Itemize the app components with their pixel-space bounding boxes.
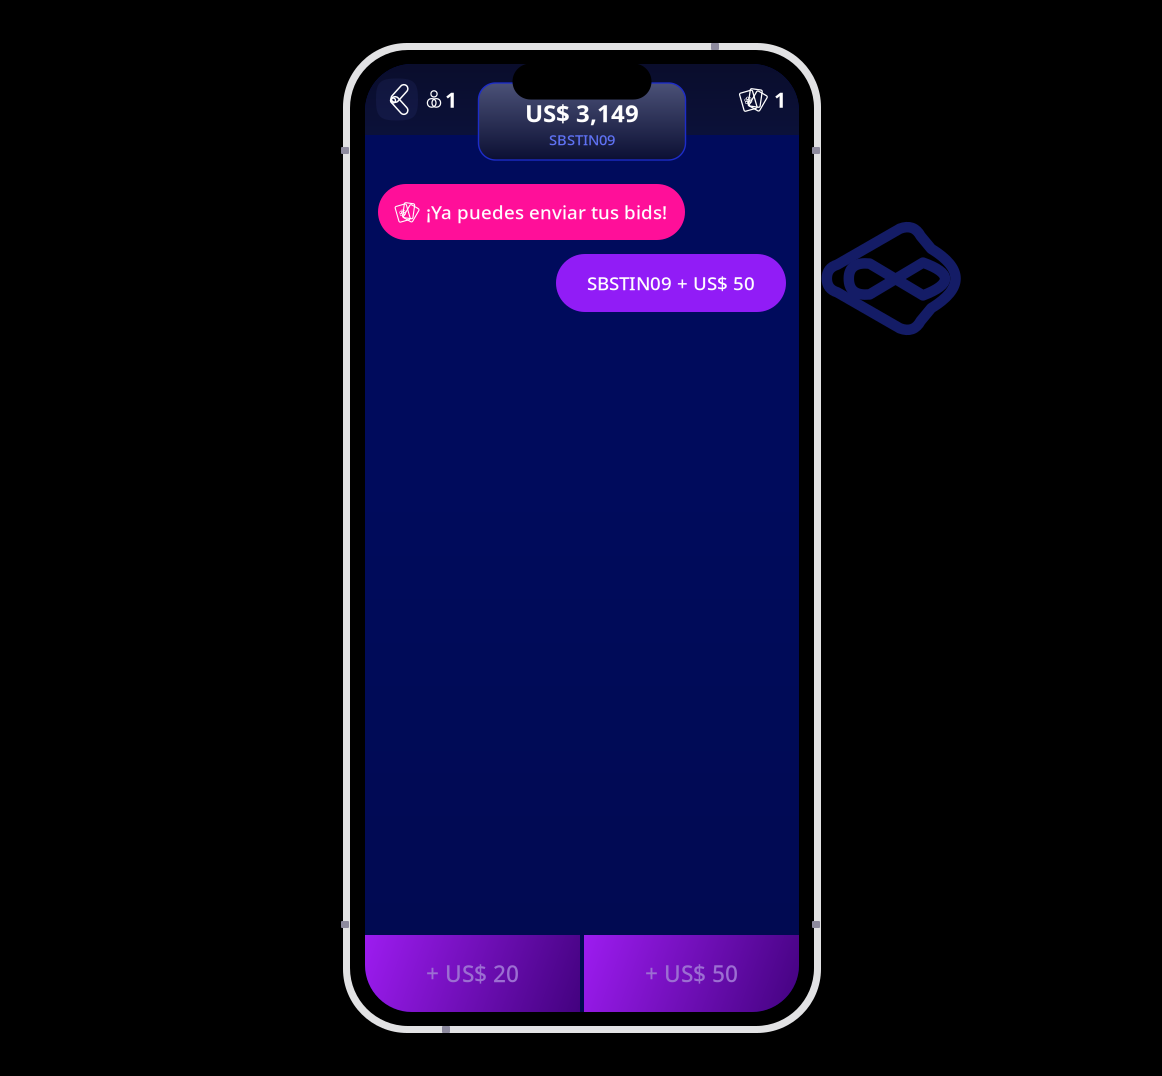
staticText: + US$ 20 — [426, 958, 519, 988]
staticText: SBSTIN09 — [549, 130, 615, 149]
button[interactable]: Back — [376, 78, 418, 120]
button[interactable]: Players: 1 — [427, 78, 457, 120]
staticText: + US$ 50 — [645, 958, 738, 988]
button[interactable]: Cards: 1 — [736, 78, 786, 120]
staticText: 1 — [445, 85, 457, 114]
staticText: SBSTIN09 + US$ 50 — [587, 271, 755, 295]
staticText: ¡Ya puedes enviar tus bids! — [426, 200, 667, 224]
button[interactable]: + US$ 50 — [584, 935, 799, 1012]
staticText: US$ 3,149 — [525, 97, 639, 129]
staticText: 1 — [774, 85, 786, 114]
button[interactable]: + US$ 20 — [365, 935, 580, 1012]
